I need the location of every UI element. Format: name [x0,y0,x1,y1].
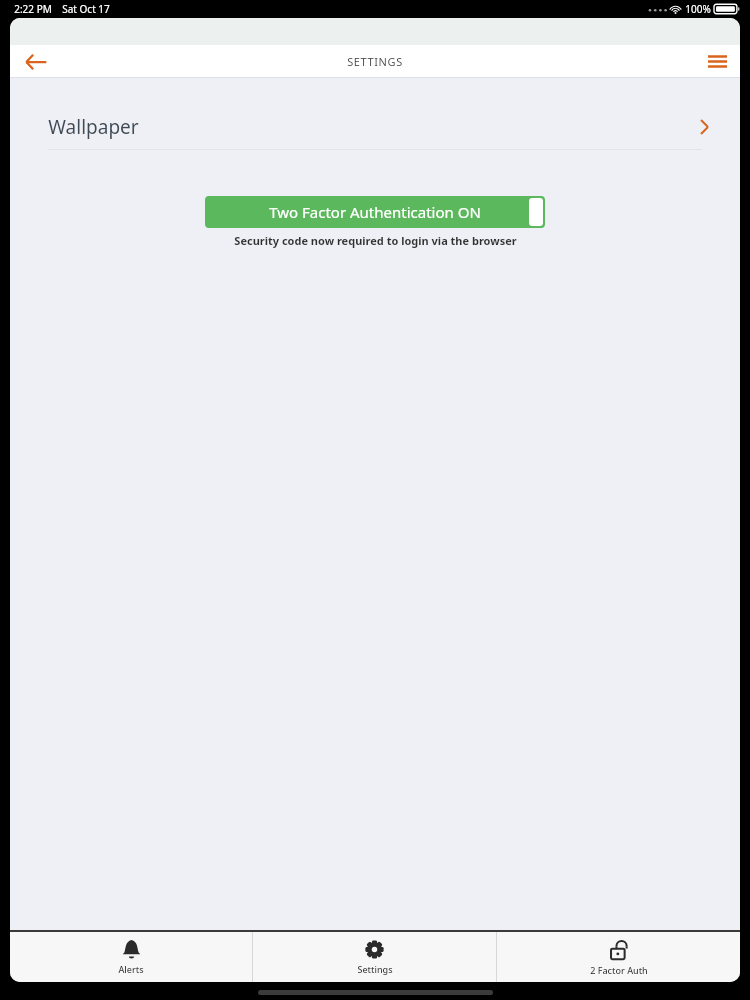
staticText: SETTINGS [347,54,403,69]
button[interactable]: Settings [253,932,496,982]
staticText: 2:22 PM [14,2,52,16]
staticText: Wallpaper [48,114,139,140]
button[interactable]: Two Factor Authentication ON [205,196,545,228]
button[interactable]: Back [10,45,62,78]
staticText: Settings [357,963,393,975]
staticText: Two Factor Authentication ON [269,202,481,222]
staticText: 100% [685,2,711,16]
staticText: Security code now required to login via … [234,233,517,248]
button[interactable]: Alerts [10,932,252,982]
button[interactable]: Menu [694,45,740,78]
staticText: Sat Oct 17 [62,2,110,16]
button[interactable]: Wallpaper [10,105,740,150]
button[interactable]: 2 Factor Auth [497,932,740,982]
staticText: Alerts [118,963,144,975]
staticText: 2 Factor Auth [590,964,648,976]
